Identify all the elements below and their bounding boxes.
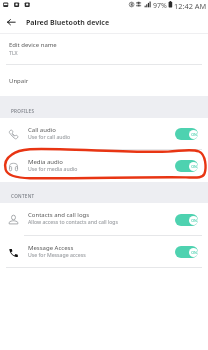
staticText: ON	[191, 218, 197, 223]
staticText: 97%	[153, 1, 167, 11]
button[interactable]: Unpair	[0, 65, 208, 96]
staticText: TLX	[9, 49, 18, 56]
staticText: PROFILES	[11, 108, 35, 114]
button[interactable]: Toggle on	[175, 160, 198, 172]
staticText: ON	[191, 250, 197, 255]
staticText: Use for Message access	[28, 251, 86, 258]
button[interactable]: Toggle on	[175, 128, 198, 140]
staticText: Message Access	[28, 244, 74, 252]
staticText: ON	[191, 132, 197, 137]
staticText: Use for media audio	[28, 165, 78, 172]
button[interactable]: Back	[0, 12, 22, 33]
staticText: ON	[191, 164, 197, 169]
staticText: Contacts and call logs	[28, 211, 90, 219]
staticText: 12:42 AM	[174, 1, 207, 11]
button[interactable]: Edit device name	[0, 34, 208, 65]
button[interactable]: Toggle on	[175, 246, 198, 258]
staticText: Paired Bluetooth device	[26, 18, 110, 28]
button[interactable]: Message Access	[0, 236, 208, 268]
staticText: Unpair	[9, 77, 29, 85]
staticText: Allow access to contacts and call logs	[28, 218, 118, 225]
button[interactable]: Toggle on	[175, 214, 198, 226]
button[interactable]: Media audio	[0, 150, 208, 182]
staticText: Call audio	[28, 126, 56, 134]
staticText: CONTENT	[11, 193, 35, 199]
staticText: Edit device name	[9, 41, 57, 49]
button[interactable]: Call audio	[0, 118, 208, 150]
staticText: Use for call audio	[28, 133, 71, 140]
staticText: Media audio	[28, 158, 63, 166]
button[interactable]: Contacts and call logs	[0, 203, 208, 236]
